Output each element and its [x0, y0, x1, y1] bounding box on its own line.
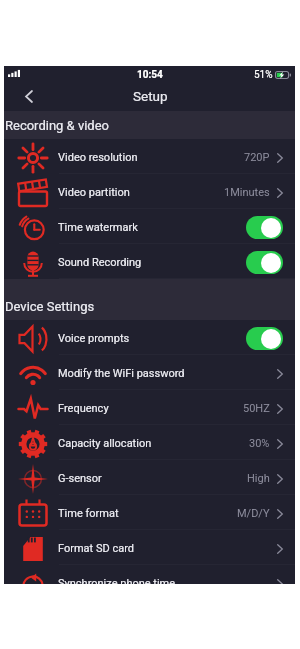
staticText: G-sensor [58, 472, 102, 485]
button[interactable]: Format SD card [4, 530, 295, 565]
button[interactable]: Frequency [4, 390, 295, 425]
button[interactable]: G-sensor [4, 460, 295, 495]
staticText: Video resolution [58, 151, 138, 164]
button[interactable]: Video partition [4, 174, 295, 209]
staticText: 720P [244, 151, 270, 164]
staticText: Sound Recording [58, 256, 142, 269]
staticText: High [247, 472, 270, 485]
staticText: Video partition [58, 186, 130, 199]
staticText: M/D/Y [237, 507, 270, 520]
staticText: Frequency [58, 402, 109, 415]
button[interactable]: Toggle [246, 327, 283, 350]
staticText: Voice prompts [58, 332, 130, 345]
button[interactable]: Capacity allocation [4, 425, 295, 460]
button[interactable]: Toggle [246, 251, 283, 274]
button[interactable]: Toggle [246, 216, 283, 239]
button[interactable]: Modify the WiFi password [4, 355, 295, 390]
button[interactable]: Synchronize phone time [4, 565, 295, 584]
staticText: Setup [133, 88, 168, 104]
staticText: Time format [58, 507, 119, 520]
staticText: Capacity allocation [58, 437, 152, 450]
staticText: Recording & video [5, 118, 110, 133]
staticText: 1Minutes [224, 186, 270, 199]
button[interactable]: Time format [4, 495, 295, 530]
staticText: Format SD card [58, 542, 134, 555]
button[interactable]: Time watermark [4, 209, 295, 244]
staticText: Device Settings [5, 299, 95, 314]
staticText: Synchronize phone time [58, 577, 176, 584]
staticText: Time watermark [58, 221, 138, 234]
staticText: 10:54 [137, 69, 163, 81]
staticText: 50HZ [243, 402, 270, 415]
button[interactable]: Back [16, 84, 50, 111]
staticText: 51% [254, 69, 273, 81]
button[interactable]: Video resolution [4, 139, 295, 174]
button[interactable]: Voice prompts [4, 320, 295, 355]
staticText: Modify the WiFi password [58, 367, 185, 380]
staticText: 30% [249, 437, 270, 450]
button[interactable]: Sound Recording [4, 244, 295, 279]
